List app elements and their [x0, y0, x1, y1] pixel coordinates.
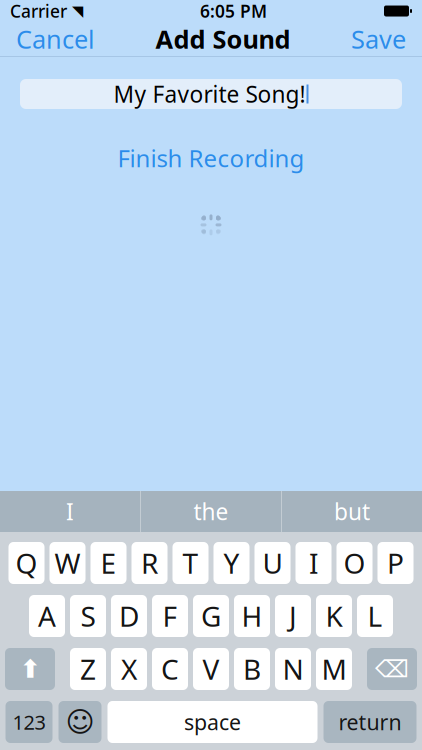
button[interactable]: V	[193, 648, 229, 690]
staticText: N	[282, 650, 303, 688]
button[interactable]: D	[111, 595, 147, 637]
staticText: B	[243, 650, 261, 688]
staticText: 123	[12, 709, 45, 735]
button[interactable]: Y	[213, 542, 249, 584]
button[interactable]: B	[234, 648, 270, 690]
button[interactable]: but	[282, 491, 422, 532]
button[interactable]: Finish Recording	[103, 135, 318, 181]
staticText: K	[325, 597, 342, 635]
staticText: Z	[80, 650, 96, 688]
button[interactable]: O	[336, 542, 372, 584]
button[interactable]: U	[254, 542, 290, 584]
button[interactable]: E	[90, 542, 126, 584]
staticText: F	[162, 597, 177, 635]
staticText: D	[119, 597, 139, 635]
button[interactable]: T	[172, 542, 208, 584]
staticText: M	[321, 650, 346, 688]
button[interactable]: I	[0, 491, 140, 532]
staticText: L	[367, 597, 382, 635]
button[interactable]: the	[141, 491, 281, 532]
button[interactable]: Shift	[5, 648, 55, 690]
button[interactable]: I	[295, 542, 331, 584]
staticText: I	[66, 496, 74, 526]
button[interactable]: Q	[8, 542, 44, 584]
button[interactable]: Z	[70, 648, 106, 690]
staticText: Cancel	[16, 22, 95, 56]
button[interactable]: J	[275, 595, 311, 637]
staticText: ☺	[65, 706, 94, 738]
button[interactable]: L	[357, 595, 393, 637]
staticText: H	[241, 597, 262, 635]
staticText: V	[202, 650, 219, 688]
staticText: space	[184, 708, 241, 736]
button[interactable]: A	[29, 595, 65, 637]
staticText: the	[193, 496, 228, 526]
staticText: ⌫	[375, 655, 409, 683]
staticText: return	[338, 708, 401, 736]
button[interactable]: G	[193, 595, 229, 637]
staticText: X	[121, 650, 137, 688]
staticText: P	[387, 544, 404, 582]
staticText: R	[141, 544, 158, 582]
button[interactable]: S	[70, 595, 106, 637]
staticText: U	[262, 544, 282, 582]
button[interactable]: Delete	[367, 648, 417, 690]
staticText: but	[334, 496, 370, 526]
staticText: ◥	[67, 3, 83, 19]
button[interactable]: P	[377, 542, 413, 584]
button[interactable]: 123	[5, 701, 52, 743]
button[interactable]: Save	[341, 16, 416, 62]
button[interactable]: N	[275, 648, 311, 690]
button[interactable]: C	[152, 648, 188, 690]
staticText: Finish Recording	[117, 142, 304, 174]
staticText: G	[201, 597, 221, 635]
staticText: ⬆	[19, 655, 40, 683]
staticText: 6:05 PM	[200, 0, 267, 22]
button[interactable]: space	[107, 701, 317, 743]
button[interactable]: M	[316, 648, 352, 690]
staticText: A	[38, 597, 56, 635]
staticText: C	[161, 650, 179, 688]
staticText: Carrier	[10, 0, 67, 22]
button[interactable]: X	[111, 648, 147, 690]
staticText: Q	[15, 544, 37, 582]
button[interactable]: Cancel	[6, 16, 105, 62]
button[interactable]: F	[152, 595, 188, 637]
staticText: Save	[351, 22, 406, 56]
staticText: O	[343, 544, 365, 582]
staticText: J	[289, 597, 297, 635]
staticText: I	[309, 544, 318, 582]
staticText: S	[80, 597, 95, 635]
staticText: E	[100, 544, 116, 582]
staticText: T	[182, 544, 198, 582]
button[interactable]: R	[131, 542, 167, 584]
button[interactable]: W	[49, 542, 85, 584]
staticText: Y	[223, 544, 239, 582]
button[interactable]: Emoji	[58, 701, 101, 743]
staticText: My Favorite Song!	[113, 79, 305, 109]
button[interactable]: return	[323, 701, 416, 743]
button[interactable]: K	[316, 595, 352, 637]
staticText: Add Sound	[155, 22, 290, 56]
staticText: W	[54, 544, 80, 582]
button[interactable]: H	[234, 595, 270, 637]
